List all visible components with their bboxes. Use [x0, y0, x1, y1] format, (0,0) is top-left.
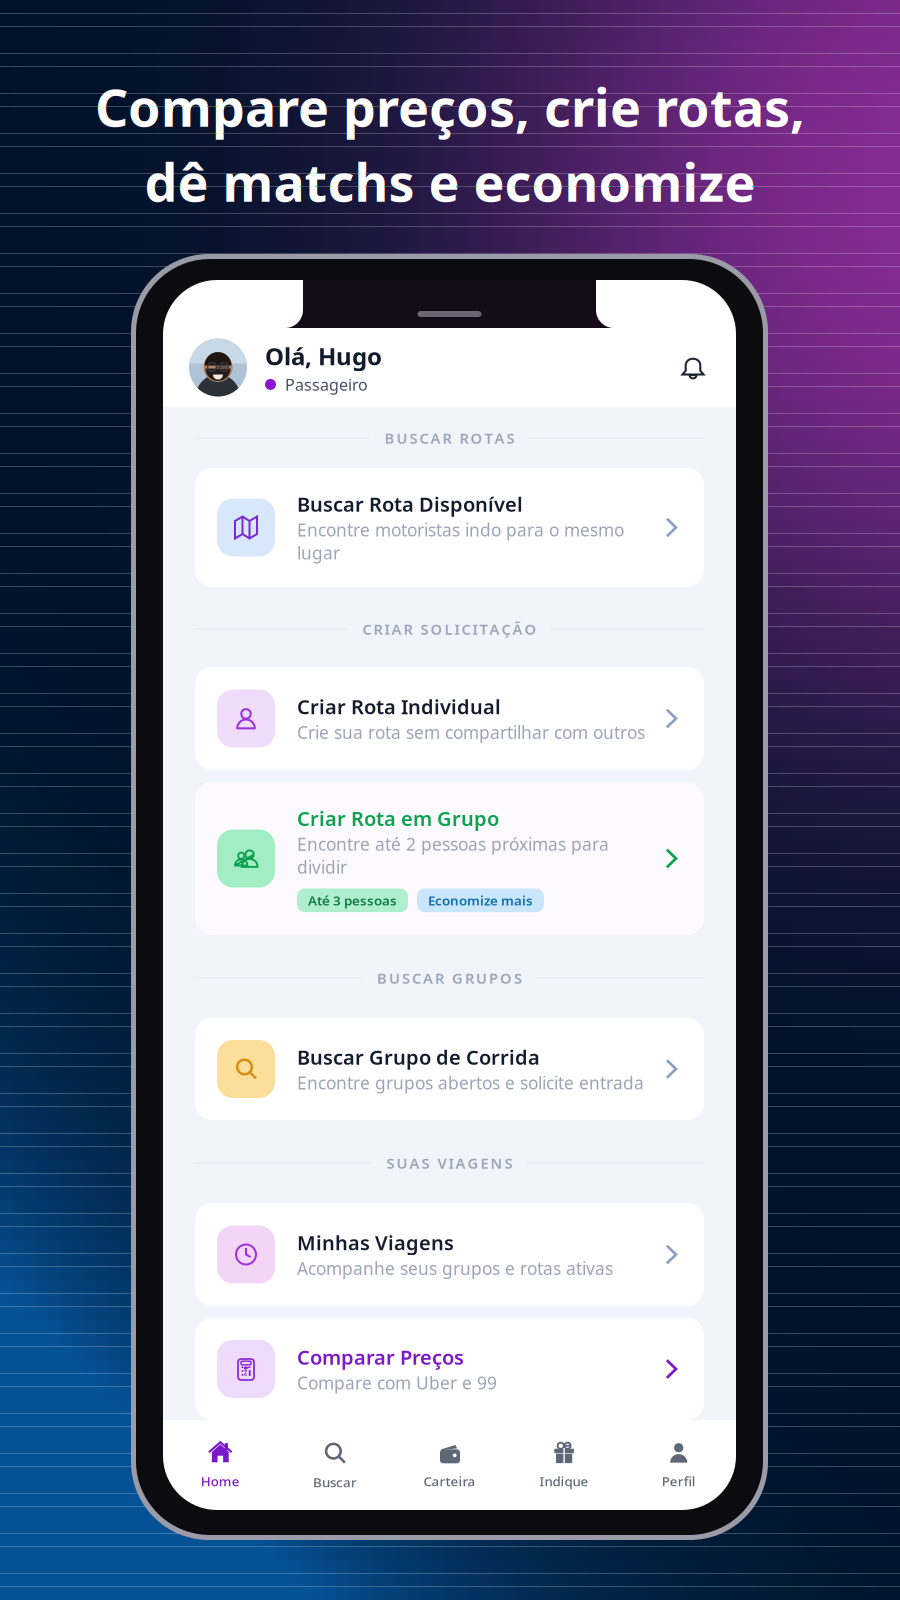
staticText: Encontre até 2 pessoas próximas para div…	[297, 832, 609, 878]
button[interactable]: Carteira	[392, 1440, 507, 1490]
staticText: B U S C A R R O T A S	[384, 428, 514, 448]
button[interactable]: Buscar Rota Disponível	[195, 468, 704, 587]
staticText: Buscar Grupo de Corrida	[297, 1044, 540, 1070]
staticText: S U A S V I A G E N S	[386, 1153, 512, 1173]
button[interactable]: Notificações	[678, 352, 736, 382]
button[interactable]: Minhas Viagens	[195, 1203, 704, 1306]
staticText: Indique	[540, 1472, 589, 1490]
staticText: Passageiro	[285, 374, 368, 395]
button[interactable]: Indique	[507, 1440, 621, 1490]
staticText: Minhas Viagens	[297, 1229, 454, 1256]
staticText: Carteira	[423, 1472, 475, 1490]
button[interactable]: Buscar	[278, 1439, 392, 1491]
staticText: Buscar Rota Disponível	[297, 491, 523, 517]
staticText: Acompanhe seus grupos e rotas ativas	[297, 1257, 613, 1280]
button[interactable]: Buscar Grupo de Corrida	[195, 1018, 704, 1120]
button[interactable]: Criar Rota em Grupo	[195, 782, 704, 935]
staticText: Buscar	[313, 1473, 357, 1491]
staticText: Encontre grupos abertos e solicite entra…	[297, 1071, 644, 1094]
staticText: dê matchs e economize	[144, 147, 755, 216]
button[interactable]: Criar Rota Individual	[195, 667, 704, 770]
staticText: Crie sua rota sem compartilhar com outro…	[297, 721, 645, 744]
staticText: Encontre motoristas indo para o mesmo lu…	[297, 518, 624, 564]
staticText: C R I A R S O L I C I T A Ç Ã O	[362, 619, 536, 639]
staticText: Perfil	[662, 1472, 696, 1490]
staticText: B U S C A R G R U P O S	[377, 968, 522, 988]
staticText: Até 3 pessoas	[308, 891, 397, 909]
staticText: Compare preços, crie rotas,	[95, 72, 805, 141]
button[interactable]: Comparar Preços	[195, 1318, 704, 1420]
staticText: Olá, Hugo	[265, 340, 382, 372]
staticText: Criar Rota em Grupo	[297, 805, 499, 831]
staticText: Home	[201, 1472, 240, 1490]
staticText: Economize mais	[428, 891, 533, 909]
staticText: Criar Rota Individual	[297, 693, 501, 720]
button[interactable]: Home	[163, 1440, 278, 1490]
staticText: Comparar Preços	[297, 1344, 464, 1370]
staticText: Compare com Uber e 99	[297, 1371, 497, 1394]
button[interactable]: Perfil	[621, 1440, 736, 1490]
